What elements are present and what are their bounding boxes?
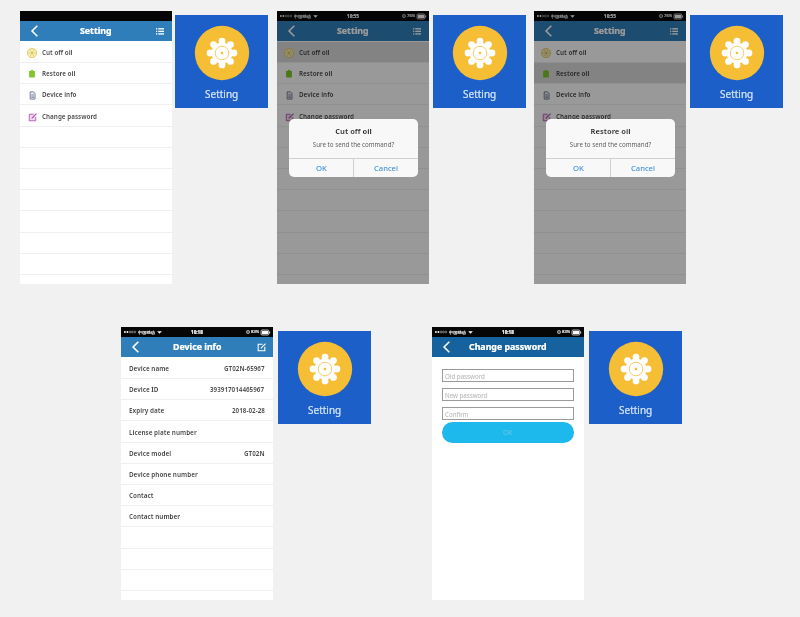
button[interactable]: Menu	[664, 21, 684, 41]
button[interactable]: Back	[279, 21, 301, 41]
staticText: 76%	[407, 13, 416, 19]
staticText: Cut off oil	[289, 126, 418, 136]
button[interactable]: Change password	[277, 106, 429, 127]
button[interactable]: Setting	[175, 15, 268, 108]
button[interactable]: Device info	[277, 84, 429, 105]
staticText: Setting	[463, 87, 497, 101]
staticText: 10:18	[502, 329, 514, 335]
button[interactable]: Restore oil	[277, 63, 429, 84]
button[interactable]: Contact number	[121, 506, 273, 527]
button[interactable]: Device info	[20, 84, 172, 105]
staticText: Contact number	[129, 512, 181, 521]
button[interactable]: Menu	[407, 21, 427, 41]
staticText: Restore oil	[42, 69, 76, 78]
button[interactable]: Setting	[278, 331, 371, 424]
staticText: OK	[573, 163, 584, 173]
button[interactable]: OK	[546, 159, 610, 177]
button[interactable]: Cancel	[611, 159, 675, 177]
staticText: License plate number	[129, 428, 197, 437]
staticText: Device info	[299, 90, 334, 99]
staticText: 76%	[664, 13, 673, 19]
staticText: Sure to send the command?	[289, 140, 418, 148]
button[interactable]: Back	[536, 21, 558, 41]
staticText: Restore oil	[546, 126, 675, 136]
staticText: Setting	[205, 87, 239, 101]
button[interactable]: Setting	[690, 15, 783, 108]
staticText: 中国移动	[449, 330, 466, 335]
staticText: 2018-02-28	[232, 406, 265, 415]
button[interactable]: Back	[123, 337, 145, 357]
staticText: Restore oil	[299, 69, 333, 78]
staticText: Setting	[720, 87, 754, 101]
button[interactable]: Device ID	[121, 379, 273, 400]
button[interactable]: Restore oil	[20, 63, 172, 84]
button[interactable]: OK	[289, 159, 353, 177]
staticText: Contact	[129, 491, 154, 500]
staticText: Change password	[469, 341, 547, 353]
button[interactable]: Old password	[442, 369, 574, 382]
staticText: Setting	[308, 403, 342, 417]
button[interactable]: Cut off oil	[20, 42, 172, 63]
button[interactable]: License plate number	[121, 422, 273, 443]
staticText: 中国移动	[138, 330, 155, 335]
staticText: Cut off oil	[299, 48, 330, 57]
staticText: Change password	[556, 112, 612, 121]
button[interactable]: New password	[442, 388, 574, 401]
staticText: OK	[316, 163, 327, 173]
staticText: Sure to send the command?	[546, 140, 675, 148]
button[interactable]: Cut off oil	[277, 42, 429, 63]
staticText: 83%	[251, 329, 260, 335]
button[interactable]: Restore oil	[534, 63, 686, 84]
button[interactable]: Device name	[121, 358, 273, 379]
button[interactable]: Contact	[121, 485, 273, 506]
staticText: Change password	[42, 112, 98, 121]
staticText: Cut off oil	[42, 48, 73, 57]
staticText: OK	[503, 428, 513, 437]
staticText: New password	[445, 391, 488, 399]
staticText: Setting	[619, 403, 653, 417]
staticText: 10:18	[191, 329, 203, 335]
button[interactable]: Cancel	[354, 159, 418, 177]
staticText: Cancel	[631, 163, 655, 173]
button[interactable]: Back	[434, 337, 456, 357]
button[interactable]: Back	[22, 21, 44, 41]
staticText: Change password	[299, 112, 355, 121]
staticText: Cancel	[374, 163, 398, 173]
staticText: Device ID	[129, 385, 159, 394]
staticText: 中国移动	[294, 14, 311, 19]
staticText: Expiry date	[129, 406, 165, 415]
button[interactable]: Expiry date	[121, 400, 273, 421]
staticText: Setting	[80, 25, 112, 37]
button[interactable]: Change password	[534, 106, 686, 127]
staticText: Device info	[556, 90, 591, 99]
staticText: Device name	[129, 364, 170, 373]
button[interactable]: Edit	[251, 337, 271, 357]
staticText: 393917014465967	[210, 385, 265, 394]
staticText: Setting	[594, 25, 626, 37]
button[interactable]: Menu	[150, 21, 170, 41]
staticText: GT02N-65967	[224, 364, 265, 373]
button[interactable]: Confirm	[442, 407, 574, 420]
staticText: Restore oil	[556, 69, 590, 78]
staticText: Device info	[173, 341, 222, 353]
button[interactable]: OK	[442, 422, 574, 443]
staticText: Device phone number	[129, 470, 198, 479]
staticText: Setting	[337, 25, 369, 37]
staticText: 83%	[562, 329, 571, 335]
button[interactable]: Device info	[534, 84, 686, 105]
staticText: Confirm	[445, 410, 469, 418]
button[interactable]: Change password	[20, 106, 172, 127]
staticText: GT02N	[244, 449, 265, 458]
staticText: Old password	[445, 372, 485, 380]
staticText: 10:55	[347, 13, 359, 19]
staticText: 10:55	[604, 13, 616, 19]
button[interactable]: Setting	[433, 15, 526, 108]
staticText: Device model	[129, 449, 172, 458]
button[interactable]: Device phone number	[121, 464, 273, 485]
button[interactable]: Device model	[121, 443, 273, 464]
button[interactable]: Cut off oil	[534, 42, 686, 63]
button[interactable]: Setting	[589, 331, 682, 424]
staticText: Cut off oil	[556, 48, 587, 57]
staticText: Device info	[42, 90, 77, 99]
staticText: 中国移动	[551, 14, 568, 19]
